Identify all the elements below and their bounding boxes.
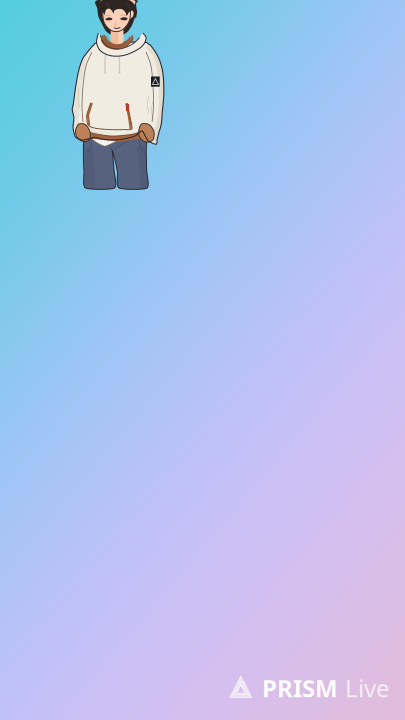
staticText: PRISM	[262, 672, 338, 704]
staticText: Live	[345, 672, 390, 704]
